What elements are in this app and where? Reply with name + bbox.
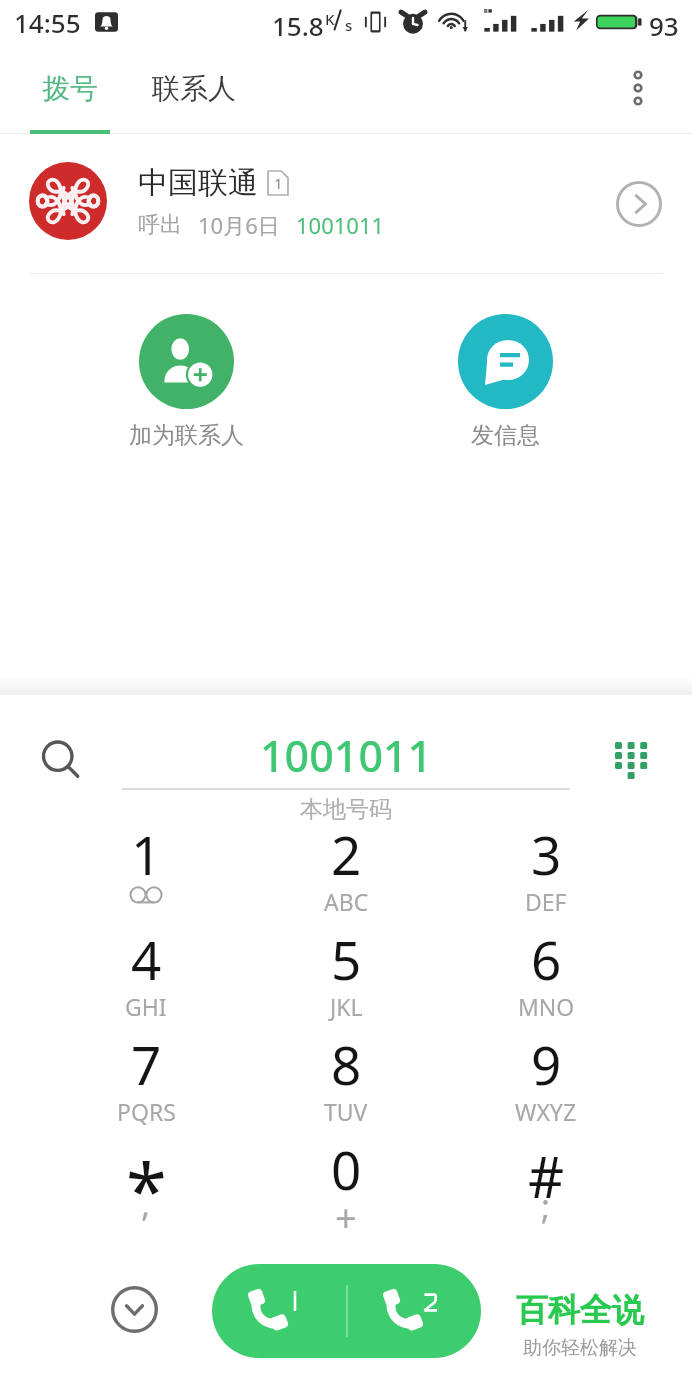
button[interactable]: More options	[606, 58, 670, 122]
staticText: 1	[274, 173, 283, 193]
button[interactable]: 加为联系人	[107, 300, 265, 450]
staticText: 14:55	[14, 5, 81, 40]
button[interactable]: 9	[446, 1032, 646, 1137]
button[interactable]: Search	[33, 731, 97, 795]
staticText: 加为联系人	[129, 421, 244, 450]
button[interactable]: 6	[446, 927, 646, 1032]
staticText: JKL	[330, 991, 363, 1022]
staticText: 8	[331, 1028, 362, 1100]
staticText: GHI	[125, 991, 167, 1022]
staticText: +	[335, 1191, 357, 1243]
staticText: 发信息	[471, 421, 540, 450]
staticText: 3	[531, 818, 562, 890]
button[interactable]: Call details	[607, 172, 671, 236]
staticText: 1001011	[260, 726, 433, 785]
staticText: WXYZ	[515, 1096, 577, 1127]
button[interactable]: Call with SIM 1	[212, 1264, 346, 1358]
staticText: *	[126, 1139, 167, 1240]
staticText: 呼出	[138, 211, 182, 239]
button[interactable]: *	[46, 1137, 246, 1242]
button[interactable]: 5	[246, 927, 446, 1032]
staticText: PQRS	[117, 1096, 176, 1127]
button[interactable]: 0	[246, 1137, 446, 1242]
staticText: 6	[531, 923, 562, 995]
button[interactable]	[0, 134, 692, 274]
staticText: 93	[649, 8, 679, 43]
staticText: 中国联通	[138, 164, 258, 202]
staticText: #	[528, 1138, 565, 1214]
staticText: 5	[331, 923, 362, 995]
staticText: 联系人	[152, 71, 236, 106]
staticText: 9	[531, 1028, 562, 1100]
staticText: ,	[141, 1181, 151, 1227]
button[interactable]: 发信息	[426, 300, 584, 450]
button[interactable]: 1	[46, 822, 246, 927]
staticText: 0	[331, 1133, 362, 1205]
staticText: 百科全说	[516, 1290, 644, 1330]
button[interactable]: 拨号	[24, 57, 116, 119]
button[interactable]: Call with SIM 2	[346, 1264, 481, 1358]
staticText: 4	[131, 923, 162, 995]
button[interactable]: 7	[46, 1032, 246, 1137]
staticText: 助你轻松解决	[523, 1336, 637, 1360]
button[interactable]: 联系人	[138, 57, 250, 119]
staticText: ;	[541, 1183, 551, 1229]
staticText: s	[345, 15, 353, 35]
button[interactable]: 2	[246, 822, 446, 927]
button[interactable]: Hide keypad	[102, 1277, 166, 1341]
staticText: 10月6日	[198, 210, 280, 240]
button[interactable]: 3	[446, 822, 646, 927]
button[interactable]: Show keypad	[599, 724, 663, 788]
button[interactable]: #	[446, 1137, 646, 1242]
button[interactable]: 4	[46, 927, 246, 1032]
staticText: 1	[131, 818, 162, 890]
staticText: 拨号	[42, 71, 98, 106]
staticText: DEF	[525, 886, 567, 917]
staticText: ABC	[324, 886, 369, 917]
staticText: TUV	[324, 1096, 368, 1127]
staticText: 2	[331, 818, 362, 890]
staticText: 7	[131, 1028, 162, 1100]
staticText: 1001011	[296, 210, 385, 240]
staticText: 本地号码	[300, 795, 392, 824]
staticText: K	[325, 9, 335, 29]
staticText: 15.8	[272, 8, 324, 43]
button[interactable]: 8	[246, 1032, 446, 1137]
staticText: MNO	[518, 991, 575, 1022]
